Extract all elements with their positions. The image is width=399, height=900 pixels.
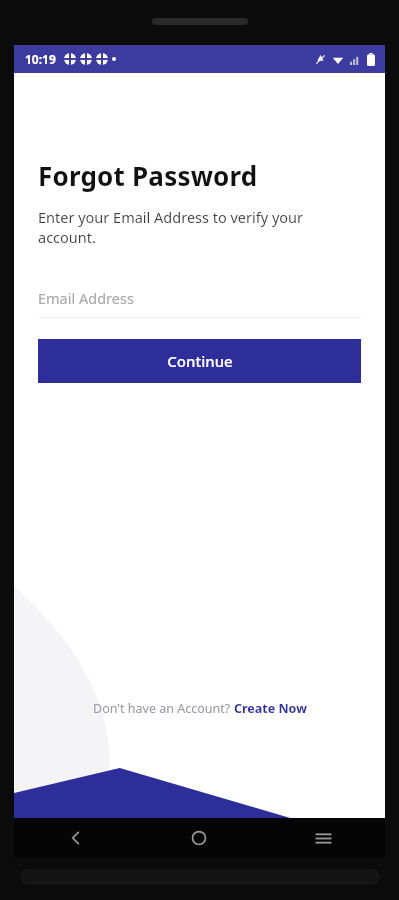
button[interactable]: Create Now	[234, 700, 307, 717]
staticText: Continue	[167, 351, 233, 371]
button[interactable]: Back	[14, 818, 137, 858]
button[interactable]: Continue	[38, 339, 361, 383]
staticText: Enter your Email Address to verify your …	[38, 207, 361, 248]
staticText: Create Now	[234, 700, 307, 717]
button[interactable]: Recent apps	[261, 818, 385, 858]
button[interactable]: Email Address	[38, 288, 361, 318]
staticText: Email Address	[38, 288, 134, 308]
staticText: 10:19	[25, 51, 56, 67]
staticText: Don't have an Account?	[93, 700, 234, 717]
button[interactable]: Home	[137, 818, 261, 858]
staticText: Forgot Password	[38, 158, 258, 193]
